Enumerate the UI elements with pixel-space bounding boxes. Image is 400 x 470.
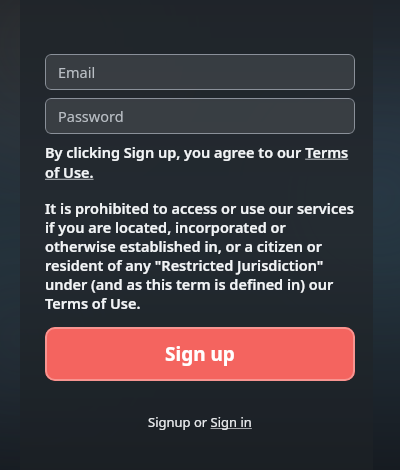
button[interactable]: Email — [45, 54, 355, 90]
button[interactable]: By clicking Sign up, you agree to our Te… — [45, 142, 355, 182]
staticText: Sign up — [165, 341, 235, 367]
button[interactable]: Password — [45, 98, 355, 134]
button[interactable]: Signup or Sign in — [148, 413, 252, 431]
staticText: Password — [58, 106, 124, 126]
button[interactable]: Sign up — [45, 327, 355, 381]
staticText: Email — [58, 62, 96, 82]
staticText: It is prohibited to access or use our se… — [45, 198, 355, 313]
staticText: Signup or Sign in — [148, 413, 252, 431]
staticText: By clicking Sign up, you agree to our Te… — [45, 142, 355, 182]
